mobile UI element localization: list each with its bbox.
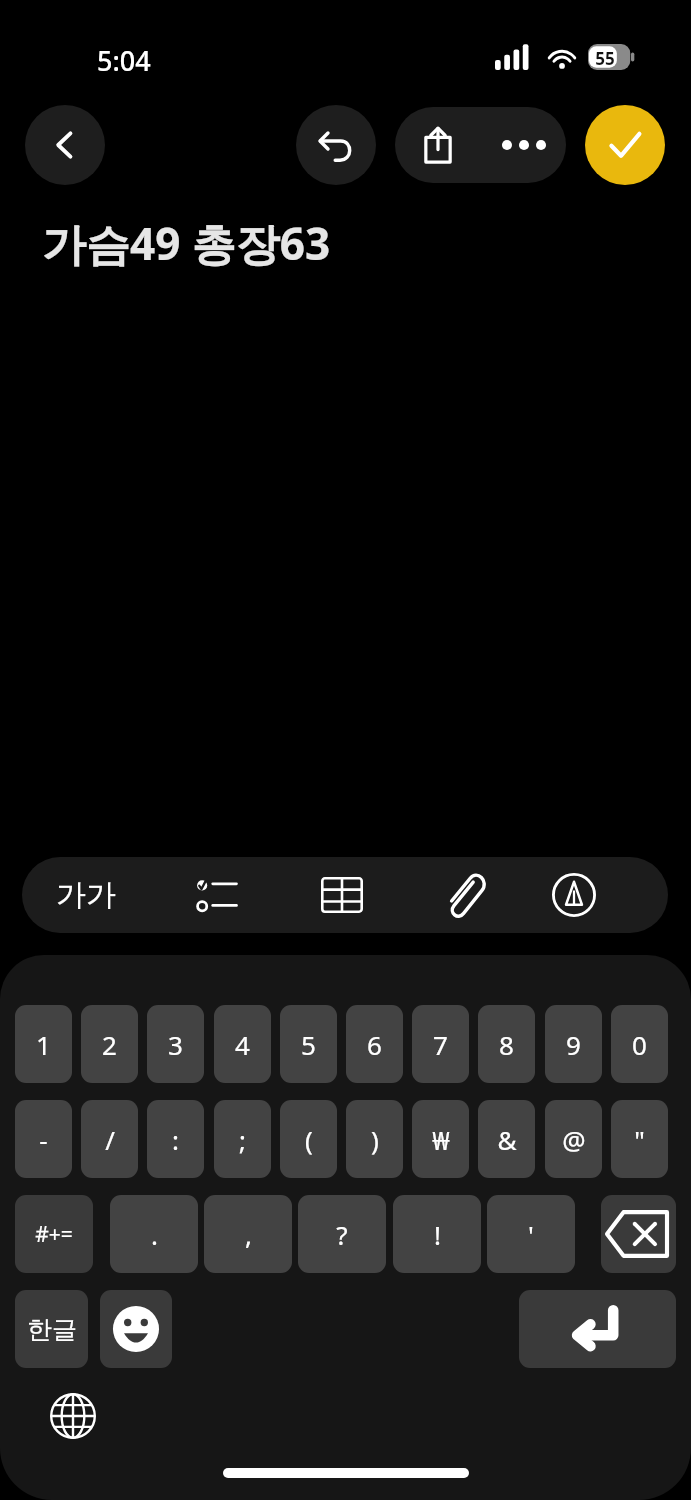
- button[interactable]: .: [110, 1195, 198, 1273]
- staticText: 6: [367, 1027, 382, 1062]
- button[interactable]: ": [611, 1100, 668, 1178]
- staticText: 가가: [56, 876, 116, 914]
- button[interactable]: 가가: [38, 857, 134, 933]
- staticText: #+=: [35, 1220, 73, 1249]
- button[interactable]: 1: [15, 1005, 72, 1083]
- button[interactable]: 한글: [15, 1290, 88, 1368]
- staticText: ": [634, 1122, 645, 1157]
- staticText: 4: [235, 1027, 250, 1062]
- staticText: @: [562, 1122, 586, 1157]
- staticText: 7: [433, 1027, 448, 1062]
- button[interactable]: 2: [81, 1005, 138, 1083]
- button[interactable]: ?: [298, 1195, 386, 1273]
- button[interactable]: B: [640, 857, 668, 933]
- staticText: 한글: [27, 1314, 77, 1345]
- button[interactable]: Markup: [526, 857, 622, 933]
- button[interactable]: 5: [280, 1005, 337, 1083]
- staticText: :: [172, 1122, 179, 1157]
- button[interactable]: Share: [395, 107, 481, 183]
- staticText: ;: [239, 1122, 246, 1157]
- staticText: ': [528, 1217, 534, 1252]
- button[interactable]: !: [393, 1195, 481, 1273]
- button[interactable]: &: [478, 1100, 535, 1178]
- staticText: ₩: [432, 1122, 450, 1157]
- button[interactable]: ;: [214, 1100, 271, 1178]
- button[interactable]: ,: [204, 1195, 292, 1273]
- staticText: -: [39, 1122, 48, 1157]
- staticText: /: [105, 1122, 115, 1157]
- button[interactable]: -: [15, 1100, 72, 1178]
- staticText: 8: [499, 1027, 514, 1062]
- button[interactable]: Table: [294, 857, 390, 933]
- button[interactable]: Backspace: [601, 1195, 676, 1273]
- button[interactable]: #+=: [15, 1195, 93, 1273]
- button[interactable]: Checklist: [168, 857, 268, 933]
- staticText: 55: [591, 47, 619, 70]
- button[interactable]: :: [147, 1100, 204, 1178]
- button[interactable]: @: [545, 1100, 602, 1178]
- staticText: 5:04: [97, 42, 151, 79]
- button[interactable]: Change keyboard: [42, 1385, 104, 1447]
- staticText: .: [151, 1217, 158, 1252]
- button[interactable]: 3: [147, 1005, 204, 1083]
- staticText: ): [371, 1122, 379, 1157]
- staticText: ,: [245, 1217, 252, 1252]
- button[interactable]: Undo: [296, 105, 376, 185]
- button[interactable]: (: [280, 1100, 337, 1178]
- staticText: ?: [336, 1217, 348, 1252]
- staticText: 9: [566, 1027, 581, 1062]
- button[interactable]: 4: [214, 1005, 271, 1083]
- button[interactable]: Emoji: [100, 1290, 172, 1368]
- staticText: !: [434, 1217, 441, 1252]
- button[interactable]: Attach: [414, 857, 510, 933]
- button[interactable]: Done: [585, 105, 665, 185]
- button[interactable]: 9: [545, 1005, 602, 1083]
- button[interactable]: /: [81, 1100, 138, 1178]
- button[interactable]: ₩: [412, 1100, 469, 1178]
- button[interactable]: 7: [412, 1005, 469, 1083]
- staticText: 5: [301, 1027, 316, 1062]
- staticText: &: [497, 1122, 517, 1157]
- button[interactable]: Back: [25, 105, 105, 185]
- button[interactable]: More options: [481, 107, 566, 183]
- button[interactable]: 8: [478, 1005, 535, 1083]
- button[interactable]: 6: [346, 1005, 403, 1083]
- button[interactable]: 가슴49 총장63: [42, 213, 331, 273]
- staticText: 2: [102, 1027, 117, 1062]
- button[interactable]: ): [346, 1100, 403, 1178]
- button[interactable]: ': [487, 1195, 575, 1273]
- staticText: 3: [168, 1027, 183, 1062]
- staticText: (: [305, 1122, 313, 1157]
- staticText: 0: [632, 1027, 647, 1062]
- button[interactable]: 0: [611, 1005, 668, 1083]
- staticText: 1: [36, 1027, 51, 1062]
- button[interactable]: Return: [519, 1290, 676, 1368]
